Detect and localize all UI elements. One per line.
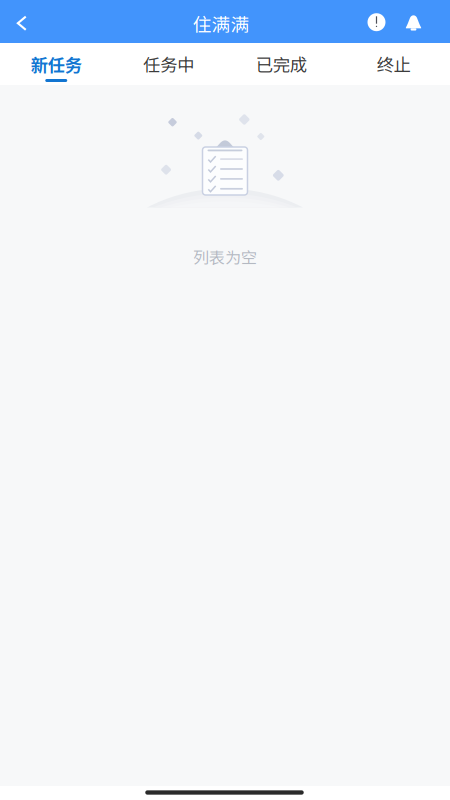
staticText: 列表为空 — [193, 245, 257, 268]
staticText: 终止 — [377, 51, 411, 77]
button[interactable]: Notifications — [395, 1, 431, 44]
button[interactable]: 新任务 — [0, 43, 112, 85]
staticText: 任务中 — [143, 51, 194, 77]
button[interactable]: Notice — [358, 1, 394, 44]
staticText: 新任务 — [31, 51, 82, 77]
staticText: 已完成 — [256, 51, 307, 77]
button[interactable]: 任务中 — [112, 43, 225, 85]
staticText: 住满满 — [192, 10, 249, 37]
button[interactable]: 已完成 — [225, 43, 337, 85]
button[interactable]: 终止 — [337, 43, 450, 85]
button[interactable]: Back — [1, 2, 43, 45]
